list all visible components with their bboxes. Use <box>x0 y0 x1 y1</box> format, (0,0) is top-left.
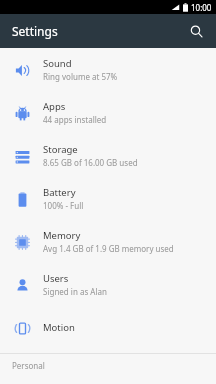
button[interactable]: Motion <box>0 306 216 349</box>
staticText: Signed in as Alan <box>43 286 107 297</box>
staticText: 100% - Full <box>43 200 84 211</box>
button[interactable]: Sound <box>0 48 216 91</box>
button[interactable]: Users <box>0 263 216 306</box>
staticText: 10:00 <box>191 2 212 13</box>
staticText: Battery <box>43 186 76 199</box>
button[interactable]: Storage <box>0 134 216 177</box>
staticText: 8.65 GB of 16.00 GB used <box>43 157 138 168</box>
staticText: Ring volume at 57% <box>43 71 118 82</box>
staticText: Sound <box>43 57 72 70</box>
staticText: Storage <box>43 143 78 156</box>
button[interactable]: Battery <box>0 177 216 220</box>
button[interactable]: Apps <box>0 91 216 134</box>
staticText: Avg 1.4 GB of 1.9 GB memory used <box>43 243 174 254</box>
staticText: Memory <box>43 229 81 242</box>
staticText: Personal <box>12 360 45 371</box>
button[interactable]: Search <box>184 19 208 43</box>
staticText: Apps <box>43 100 66 113</box>
staticText: Settings <box>12 23 58 39</box>
staticText: Users <box>43 272 69 285</box>
staticText: 44 apps installed <box>43 114 107 125</box>
staticText: Motion <box>43 321 75 334</box>
button[interactable]: Memory <box>0 220 216 263</box>
